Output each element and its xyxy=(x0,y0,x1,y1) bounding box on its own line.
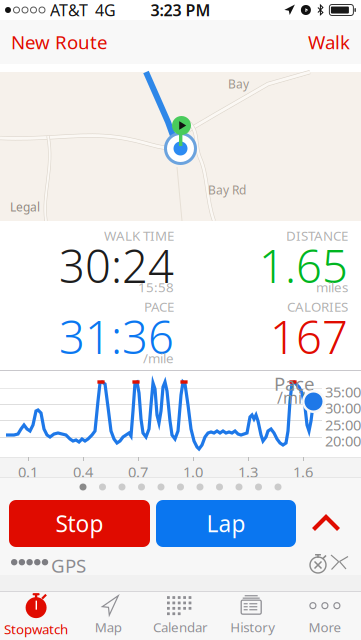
staticText: PACE xyxy=(144,298,174,315)
staticText: Legal xyxy=(10,199,40,215)
staticText: 15:58 xyxy=(138,278,174,296)
staticText: Bay xyxy=(228,76,249,92)
button[interactable]: History xyxy=(217,591,289,640)
staticText: 1.0 xyxy=(183,462,203,481)
staticText: History xyxy=(230,618,275,636)
staticText: 0.1 xyxy=(18,462,38,481)
staticText: Calendar xyxy=(153,618,208,636)
staticText: 3:23 PM xyxy=(150,0,210,21)
staticText: New Route xyxy=(11,30,108,54)
staticText: AT&T xyxy=(50,0,88,21)
staticText: 30:24 xyxy=(59,235,174,295)
button[interactable]: Stop xyxy=(9,500,150,547)
staticText: 25:00 xyxy=(325,415,361,434)
button[interactable]: New Route xyxy=(0,20,119,64)
staticText: 31:36 xyxy=(59,306,174,366)
button[interactable]: Walk xyxy=(297,20,361,64)
staticText: CALORIES xyxy=(287,298,348,315)
staticText: 167 xyxy=(270,306,348,366)
staticText: Walk xyxy=(308,30,350,54)
staticText: Bay Rd xyxy=(208,182,246,198)
button[interactable]: Activity type xyxy=(330,554,349,571)
staticText: 30:00 xyxy=(325,398,361,417)
staticText: Pace xyxy=(274,371,315,396)
staticText: 1.3 xyxy=(238,462,258,481)
staticText: 0.4 xyxy=(73,462,93,481)
staticText: 35:00 xyxy=(325,382,361,401)
staticText: 4G xyxy=(95,0,116,21)
button[interactable]: Map xyxy=(72,591,144,640)
button[interactable]: Lap xyxy=(156,500,296,547)
staticText: 20:00 xyxy=(325,431,361,450)
staticText: 0.7 xyxy=(128,462,148,481)
staticText: Lap xyxy=(206,508,245,538)
staticText: Map xyxy=(95,618,122,636)
button[interactable]: More xyxy=(289,591,361,640)
staticText: 1.65 xyxy=(259,235,348,295)
staticText: Stopwatch xyxy=(4,620,68,638)
staticText: /mile xyxy=(143,349,174,367)
staticText: 1.6 xyxy=(293,462,313,481)
button[interactable]: Auto pause xyxy=(308,553,330,575)
staticText: Stop xyxy=(55,508,103,538)
staticText: GPS xyxy=(51,553,86,578)
button[interactable]: Stopwatch xyxy=(0,591,72,640)
staticText: More xyxy=(308,618,341,636)
staticText: DISTANCE xyxy=(286,227,348,244)
staticText: miles xyxy=(316,278,348,296)
button[interactable]: Calendar xyxy=(144,591,217,640)
button[interactable]: Show more controls xyxy=(303,500,349,547)
staticText: WALK TIME xyxy=(104,227,174,244)
staticText: /mile xyxy=(277,387,315,408)
